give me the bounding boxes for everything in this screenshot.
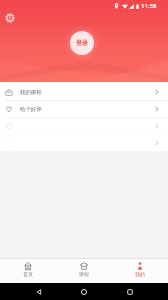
staticText: 我的课程 bbox=[20, 89, 42, 96]
button[interactable]: Recents bbox=[123, 285, 137, 299]
button[interactable]: Home bbox=[77, 285, 91, 299]
staticText: 我的 bbox=[135, 271, 145, 277]
staticText: 首页 bbox=[23, 271, 33, 277]
button[interactable]: 给个好评 bbox=[0, 101, 168, 117]
button[interactable]: 登录 bbox=[70, 31, 94, 55]
button[interactable]: 首页 bbox=[0, 259, 56, 283]
button[interactable]: Back bbox=[32, 285, 46, 299]
button[interactable]: 课程 bbox=[56, 259, 112, 283]
staticText: 11:58 bbox=[141, 2, 157, 10]
button[interactable]: 我的课程 bbox=[0, 84, 168, 100]
staticText: 课程 bbox=[79, 271, 89, 277]
button[interactable]: 我的 bbox=[112, 259, 168, 283]
staticText: 登录 bbox=[76, 39, 88, 47]
button[interactable]: Settings bbox=[5, 13, 15, 23]
staticText: 给个好评 bbox=[20, 106, 42, 113]
